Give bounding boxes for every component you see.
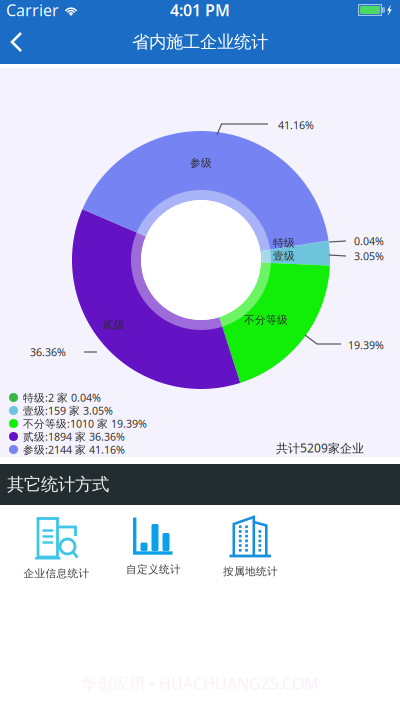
- button[interactable]: 自定义统计: [105, 505, 202, 590]
- staticText: 壹级:159 家 3.05%: [23, 403, 113, 418]
- staticText: 省内施工企业统计: [132, 31, 268, 53]
- staticText: 参级:2144 家 41.16%: [23, 442, 125, 457]
- staticText: Carrier: [6, 0, 59, 21]
- staticText: 按属地统计: [223, 565, 278, 578]
- staticText: 参级: [190, 156, 212, 169]
- staticText: 共计5209家企业: [276, 440, 364, 456]
- staticText: 3.05%: [354, 249, 384, 263]
- staticText: 4:01 PM: [170, 0, 230, 21]
- staticText: 36.36%: [30, 345, 66, 359]
- button[interactable]: 按属地统计: [202, 505, 299, 590]
- staticText: 华创应用 • HUACHUANGZS.COM: [81, 673, 319, 694]
- staticText: 不分等级:1010 家 19.39%: [23, 416, 147, 431]
- staticText: 企业信息统计: [23, 567, 89, 580]
- staticText: 不分等级: [244, 313, 288, 326]
- staticText: 特级:2 家 0.04%: [23, 390, 101, 405]
- staticText: 19.39%: [348, 338, 384, 352]
- button[interactable]: 返回: [0, 24, 38, 60]
- staticText: 其它统计方式: [7, 474, 109, 495]
- staticText: 特级: [273, 236, 295, 249]
- button[interactable]: 企业信息统计: [8, 505, 105, 590]
- staticText: 自定义统计: [126, 563, 181, 576]
- staticText: 0.04%: [354, 234, 384, 248]
- staticText: 贰级:1894 家 36.36%: [23, 429, 125, 444]
- staticText: 41.16%: [278, 118, 314, 132]
- staticText: 贰级: [103, 318, 125, 331]
- staticText: 壹级: [273, 249, 295, 262]
